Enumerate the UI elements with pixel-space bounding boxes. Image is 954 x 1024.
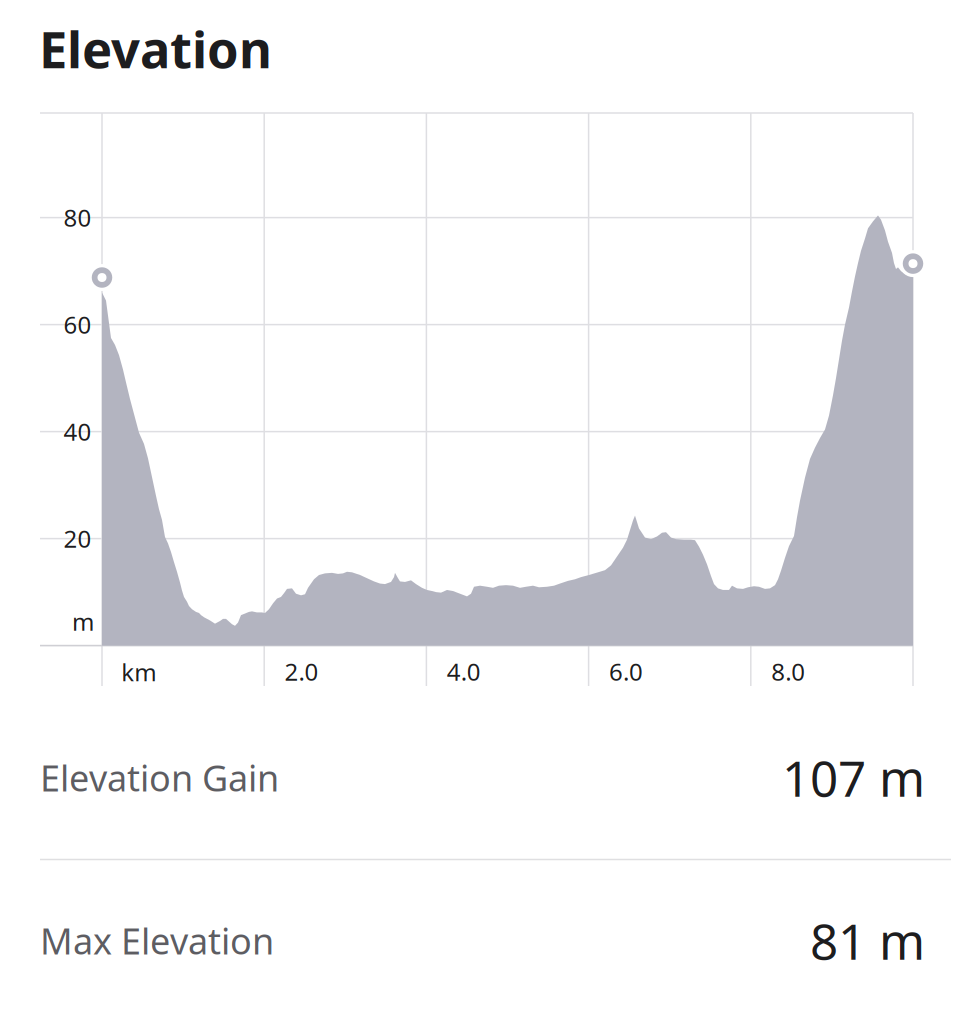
staticText: m xyxy=(72,606,94,637)
staticText: Elevation xyxy=(39,15,272,82)
staticText: 20 xyxy=(63,523,91,554)
staticText: 81 m xyxy=(810,908,925,973)
staticText: 107 m xyxy=(782,745,925,810)
staticText: 8.0 xyxy=(771,655,805,687)
staticText: 40 xyxy=(63,416,91,447)
staticText: km xyxy=(121,656,156,688)
button[interactable]: Elevation Gain xyxy=(0,696,954,859)
staticText: 80 xyxy=(63,202,91,233)
staticText: 60 xyxy=(63,309,91,340)
staticText: 4.0 xyxy=(447,655,481,687)
staticText: Elevation Gain xyxy=(40,754,279,801)
staticText: 2.0 xyxy=(285,655,319,687)
staticText: Max Elevation xyxy=(40,917,274,964)
staticText: 6.0 xyxy=(609,655,643,687)
button[interactable]: Max Elevation xyxy=(0,859,954,1022)
